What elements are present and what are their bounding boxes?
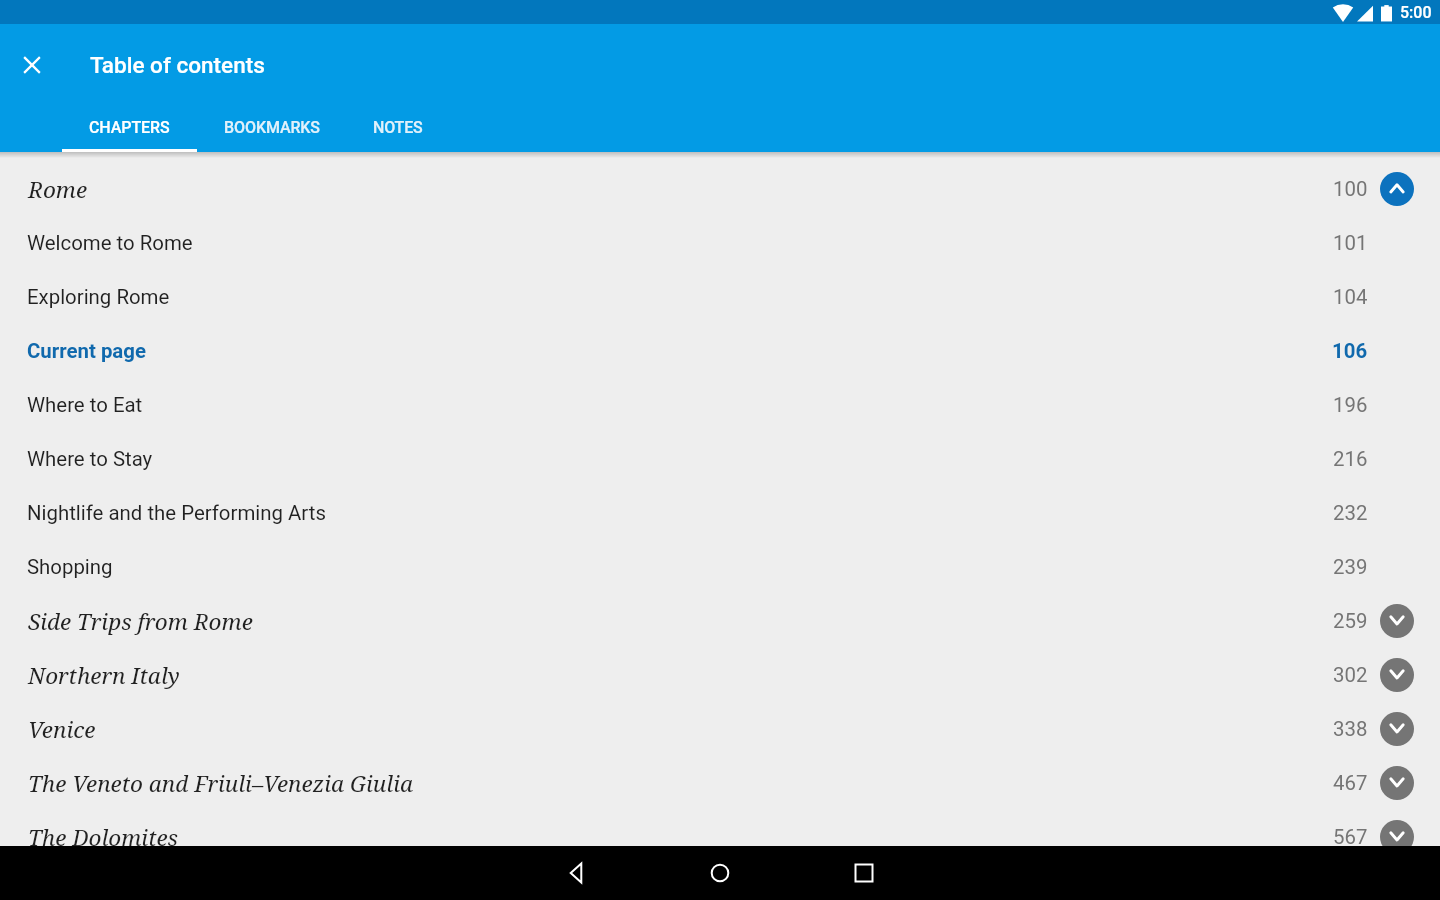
button[interactable]: Exploring Rome (0, 270, 1440, 324)
staticText: 100 (1333, 177, 1368, 201)
button[interactable]: Close (8, 41, 56, 89)
staticText: Northern Italy (28, 660, 180, 691)
staticText: 259 (1333, 609, 1368, 633)
button[interactable]: Current page (0, 324, 1440, 378)
button[interactable]: Welcome to Rome (0, 216, 1440, 270)
staticText: 567 (1333, 825, 1368, 846)
staticText: 216 (1333, 447, 1368, 471)
staticText: 104 (1333, 285, 1368, 309)
staticText: Side Trips from Rome (28, 606, 253, 637)
staticText: 106 (1332, 339, 1368, 363)
staticText: NOTES (373, 118, 423, 137)
button[interactable]: Northern Italy (0, 648, 1440, 702)
staticText: 302 (1333, 663, 1368, 687)
staticText: Venice (28, 714, 96, 745)
button[interactable]: BOOKMARKS (197, 96, 346, 152)
staticText: 5:00 (1400, 3, 1432, 22)
button[interactable]: Where to Eat (0, 378, 1440, 432)
button[interactable]: CHAPTERS (62, 96, 197, 152)
staticText: 338 (1333, 717, 1368, 741)
staticText: Where to Eat (27, 393, 143, 417)
button[interactable]: Where to Stay (0, 432, 1440, 486)
staticText: The Veneto and Friuli–Venezia Giulia (28, 768, 413, 799)
button[interactable]: Shopping (0, 540, 1440, 594)
staticText: Table of contents (90, 52, 265, 78)
staticText: The Dolomites (28, 822, 179, 846)
button[interactable]: Venice (0, 702, 1440, 756)
button[interactable]: Home (648, 846, 792, 900)
button[interactable]: Expand (1380, 604, 1414, 638)
staticText: Shopping (27, 555, 113, 579)
staticText: 101 (1333, 231, 1368, 255)
staticText: Welcome to Rome (27, 231, 193, 255)
button[interactable]: Expand (1380, 820, 1414, 846)
staticText: Exploring Rome (27, 285, 170, 309)
button[interactable]: NOTES (346, 96, 449, 152)
button[interactable]: Expand (1380, 766, 1414, 800)
staticText: 232 (1333, 501, 1368, 525)
staticText: 239 (1333, 555, 1368, 579)
button[interactable]: Recent apps (792, 846, 936, 900)
button[interactable]: Collapse (1380, 172, 1414, 206)
staticText: Where to Stay (27, 447, 153, 471)
button[interactable]: The Dolomites (0, 810, 1440, 846)
button[interactable]: Side Trips from Rome (0, 594, 1440, 648)
button[interactable]: The Veneto and Friuli–Venezia Giulia (0, 756, 1440, 810)
staticText: BOOKMARKS (224, 118, 320, 137)
button[interactable]: Rome (0, 162, 1440, 216)
button[interactable]: Expand (1380, 658, 1414, 692)
staticText: Nightlife and the Performing Arts (27, 501, 326, 525)
staticText: 196 (1333, 393, 1368, 417)
staticText: 467 (1333, 771, 1368, 795)
staticText: Current page (27, 339, 146, 363)
button[interactable]: Back (504, 846, 648, 900)
button[interactable]: Nightlife and the Performing Arts (0, 486, 1440, 540)
staticText: Rome (28, 174, 88, 205)
button[interactable]: Expand (1380, 712, 1414, 746)
staticText: CHAPTERS (89, 118, 170, 137)
